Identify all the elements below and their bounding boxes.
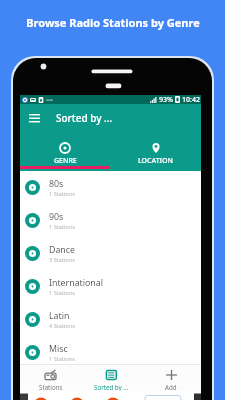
staticText: 1 Stations (49, 355, 75, 363)
button[interactable]: International (20, 270, 201, 303)
button[interactable]: 80s (20, 171, 201, 204)
staticText: 1 Stations (49, 289, 75, 297)
staticText: Misc (49, 343, 68, 355)
staticText: 1 Stations (49, 223, 75, 231)
button[interactable]: Dance (20, 237, 201, 270)
button[interactable]: Misc (20, 336, 201, 369)
button[interactable]: Stations (20, 365, 81, 391)
staticText: 4 Stations (49, 322, 75, 330)
button[interactable]: Sorted by ... (81, 365, 141, 391)
button[interactable]: Add (141, 365, 201, 391)
staticText: International (49, 277, 103, 289)
staticText: 10:42 (182, 95, 200, 104)
staticText: 3 Stations (49, 256, 75, 264)
staticText: Sorted by ... (94, 383, 129, 391)
staticText: 80s (49, 178, 64, 190)
staticText: Latin (49, 310, 70, 322)
button[interactable]: LOCATION (110, 132, 201, 166)
staticText: Dance (49, 244, 75, 256)
staticText: Add (165, 383, 177, 391)
button[interactable]: Open navigation menu (20, 104, 48, 132)
staticText: 1 Stations (49, 190, 75, 198)
staticText: Stations (39, 383, 63, 391)
staticText: Browse Radio Stations by Genre (26, 15, 200, 30)
staticText: 90s (49, 211, 64, 223)
button[interactable]: 90s (20, 204, 201, 237)
staticText: LOCATION (138, 156, 173, 166)
staticText: Sorted by ... (56, 111, 113, 125)
button[interactable]: Latin (20, 303, 201, 336)
staticText: 93% (159, 95, 173, 104)
button[interactable]: GENRE (20, 132, 110, 166)
staticText: GENRE (54, 156, 77, 166)
